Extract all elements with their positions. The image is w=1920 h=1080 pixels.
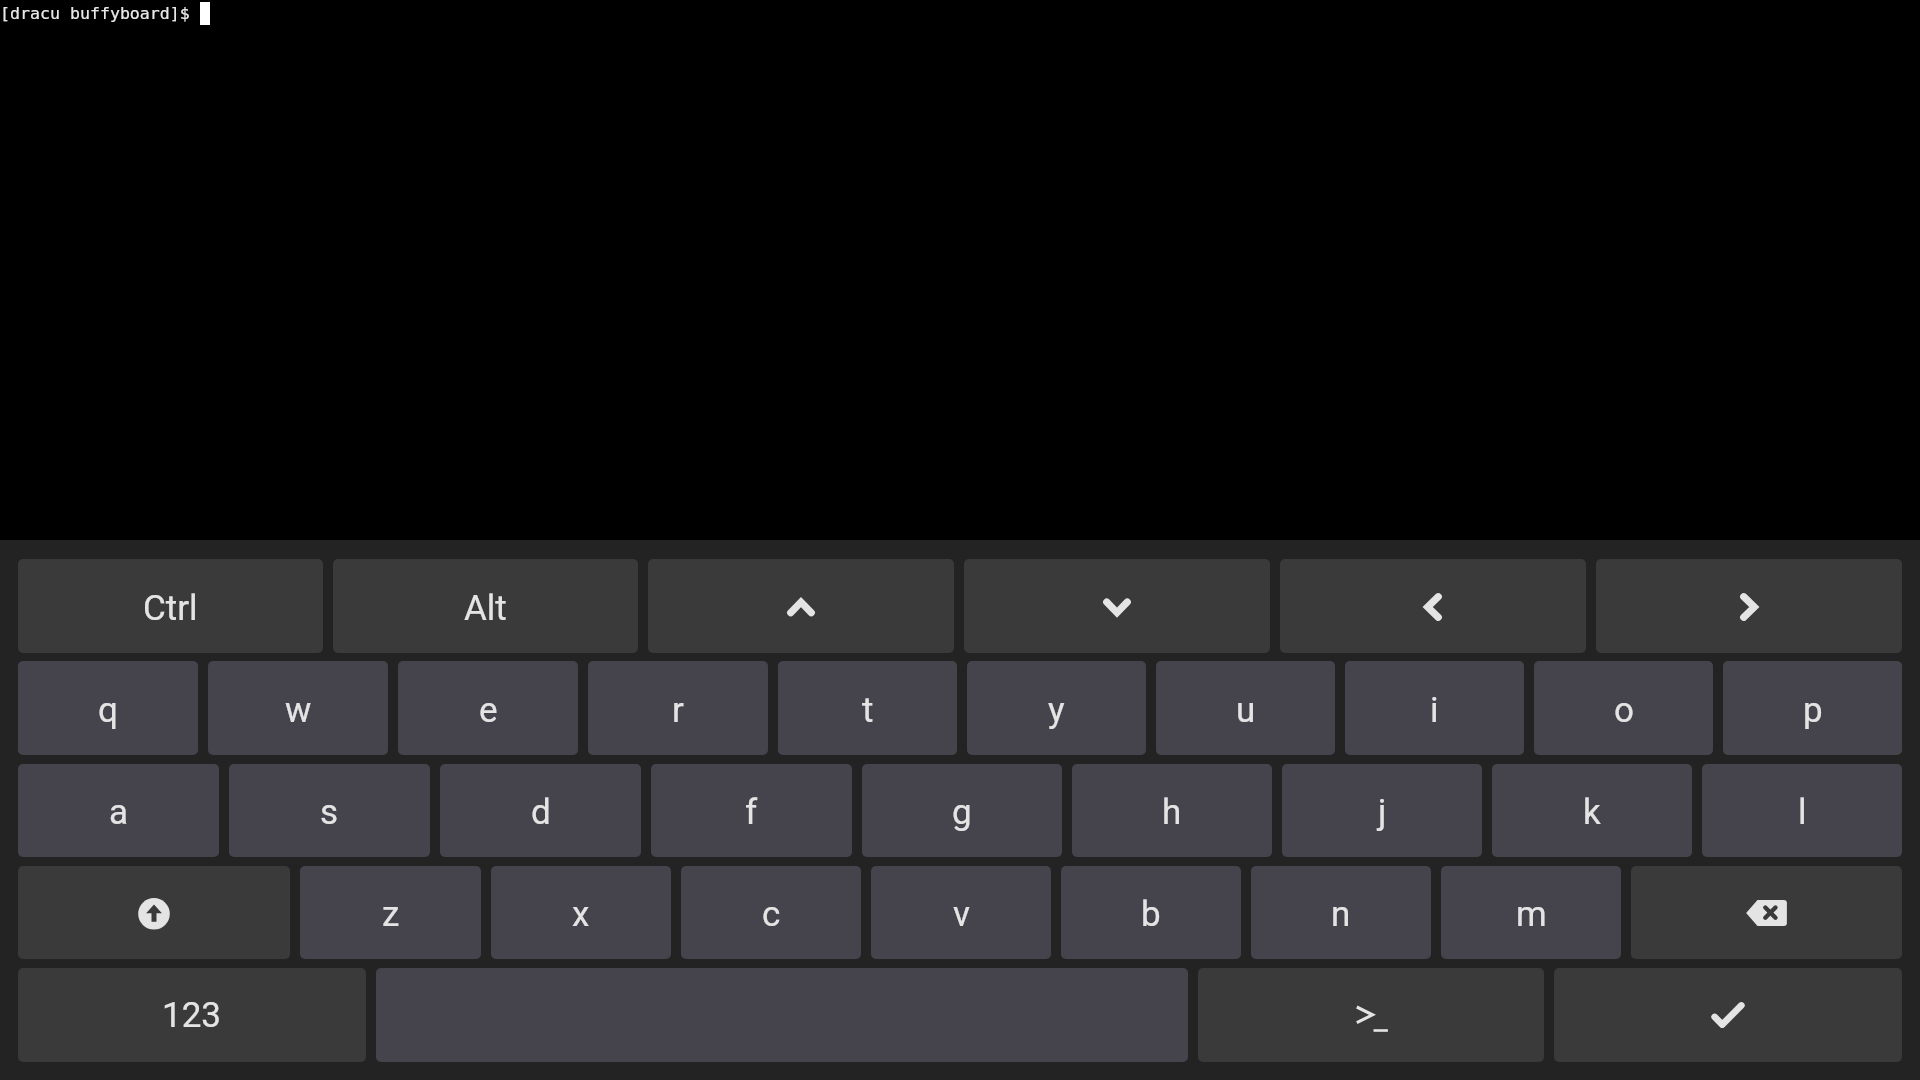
- button[interactable]: v: [871, 866, 1051, 959]
- button[interactable]: d: [440, 764, 641, 857]
- staticText: v: [953, 894, 970, 935]
- button[interactable]: z: [300, 866, 481, 959]
- button[interactable]: x: [491, 866, 671, 959]
- button[interactable]: 123: [18, 968, 366, 1062]
- staticText: r: [672, 690, 684, 731]
- staticText: p: [1803, 690, 1823, 731]
- button[interactable]: f: [651, 764, 852, 857]
- staticText: q: [98, 690, 118, 731]
- button[interactable]: Enter: [1554, 968, 1902, 1062]
- button[interactable]: j: [1282, 764, 1482, 857]
- button[interactable]: i: [1345, 661, 1524, 755]
- staticText: s: [320, 792, 339, 833]
- staticText: n: [1331, 894, 1351, 935]
- staticText: k: [1583, 792, 1601, 833]
- button[interactable]: Alt: [333, 559, 638, 653]
- button[interactable]: t: [778, 661, 957, 755]
- staticText: w: [285, 690, 312, 731]
- staticText: c: [762, 894, 781, 935]
- button[interactable]: h: [1072, 764, 1272, 857]
- staticText: a: [109, 792, 129, 833]
- button[interactable]: Arrow up: [648, 559, 954, 653]
- button[interactable]: Ctrl: [18, 559, 323, 653]
- staticText: Alt: [464, 588, 507, 629]
- button[interactable]: Terminal: [1198, 968, 1544, 1062]
- staticText: 123: [162, 995, 222, 1036]
- button[interactable]: Arrow right: [1596, 559, 1902, 653]
- button[interactable]: Backspace: [1631, 866, 1902, 959]
- staticText: l: [1798, 792, 1807, 833]
- staticText: j: [1378, 792, 1387, 833]
- button[interactable]: a: [18, 764, 219, 857]
- button[interactable]: g: [862, 764, 1062, 857]
- button[interactable]: Shift: [18, 866, 290, 959]
- button[interactable]: y: [967, 661, 1146, 755]
- staticText: d: [531, 792, 551, 833]
- button[interactable]: n: [1251, 866, 1431, 959]
- button[interactable]: r: [588, 661, 768, 755]
- staticText: h: [1162, 792, 1182, 833]
- staticText: e: [479, 690, 498, 731]
- staticText: g: [952, 792, 972, 833]
- staticText: m: [1516, 894, 1547, 935]
- button[interactable]: s: [229, 764, 430, 857]
- staticText: i: [1430, 690, 1439, 731]
- button[interactable]: p: [1723, 661, 1902, 755]
- button[interactable]: m: [1441, 866, 1621, 959]
- staticText: [dracu buffyboard]$: [0, 4, 190, 23]
- staticText: f: [745, 792, 758, 833]
- button[interactable]: c: [681, 866, 861, 959]
- button[interactable]: k: [1492, 764, 1692, 857]
- staticText: x: [572, 894, 590, 935]
- staticText: t: [862, 690, 874, 731]
- button[interactable]: b: [1061, 866, 1241, 959]
- button[interactable]: Arrow down: [964, 559, 1270, 653]
- button[interactable]: l: [1702, 764, 1902, 857]
- staticText: b: [1141, 894, 1161, 935]
- button[interactable]: u: [1156, 661, 1335, 755]
- staticText: o: [1614, 690, 1634, 731]
- staticText: Ctrl: [143, 588, 198, 629]
- staticText: y: [1048, 690, 1065, 731]
- button[interactable]: Arrow left: [1280, 559, 1586, 653]
- button[interactable]: e: [398, 661, 578, 755]
- button[interactable]: q: [18, 661, 198, 755]
- button[interactable]: o: [1534, 661, 1713, 755]
- staticText: u: [1236, 690, 1256, 731]
- staticText: z: [382, 894, 400, 935]
- button[interactable]: w: [208, 661, 388, 755]
